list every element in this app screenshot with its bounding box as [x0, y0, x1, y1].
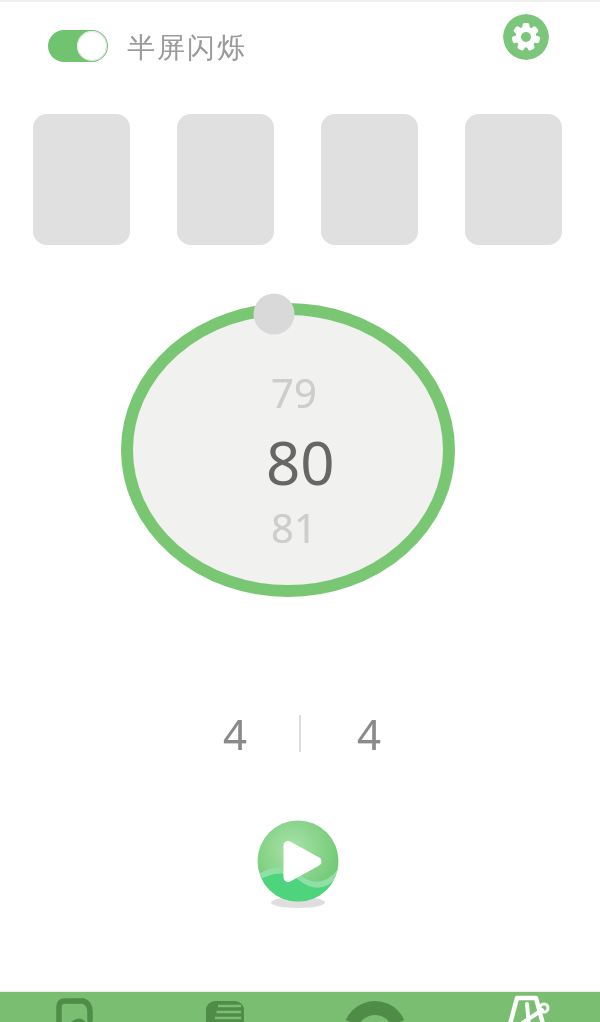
staticText: 80	[266, 421, 335, 491]
button[interactable]	[250, 812, 350, 912]
button[interactable]: 4	[209, 705, 261, 753]
staticText: 4	[357, 705, 382, 753]
button[interactable]	[48, 30, 108, 62]
staticText: 79	[271, 365, 317, 413]
button[interactable]	[503, 14, 549, 60]
button[interactable]	[0, 992, 150, 1022]
staticText: 81	[271, 500, 317, 548]
button[interactable]	[300, 992, 450, 1022]
button[interactable]	[33, 114, 130, 245]
button[interactable]	[321, 114, 418, 245]
button[interactable]	[450, 992, 600, 1022]
staticText: 4	[223, 705, 248, 753]
button[interactable]	[465, 114, 562, 245]
button[interactable]: 4	[343, 705, 395, 753]
button[interactable]	[150, 992, 300, 1022]
staticText: 半屏闪烁	[126, 30, 246, 62]
button[interactable]	[177, 114, 274, 245]
